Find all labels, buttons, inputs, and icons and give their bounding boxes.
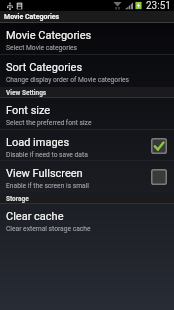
button[interactable]: View Fullscreen xyxy=(0,161,174,193)
button[interactable]: Load images xyxy=(0,130,174,161)
staticText: Clear cache xyxy=(6,210,64,223)
staticText: Movie Categories xyxy=(6,29,92,42)
staticText: Load images xyxy=(6,136,70,149)
staticText: 23:51 xyxy=(146,0,171,11)
staticText: Storage xyxy=(6,195,29,203)
staticText: Change display order of Movie categories xyxy=(6,76,130,84)
button[interactable]: Font size xyxy=(0,98,174,130)
staticText: Sort Categories xyxy=(6,61,83,74)
staticText: View Settings xyxy=(6,89,47,97)
staticText: Enable if the screen is small xyxy=(6,182,89,190)
button[interactable]: Sort Categories xyxy=(0,55,174,87)
staticText: Disable if need to save data xyxy=(6,151,88,159)
staticText: Clear external storage cache xyxy=(6,225,91,233)
button[interactable]: Clear cache xyxy=(0,204,174,237)
staticText: Movie Categories xyxy=(4,13,60,21)
staticText: Font size xyxy=(6,104,51,117)
staticText: View Fullscreen xyxy=(6,167,83,180)
staticText: Select the preferred font size xyxy=(6,119,92,127)
staticText: Select Movie categories xyxy=(6,44,78,52)
button[interactable]: Movie Categories xyxy=(0,23,174,55)
